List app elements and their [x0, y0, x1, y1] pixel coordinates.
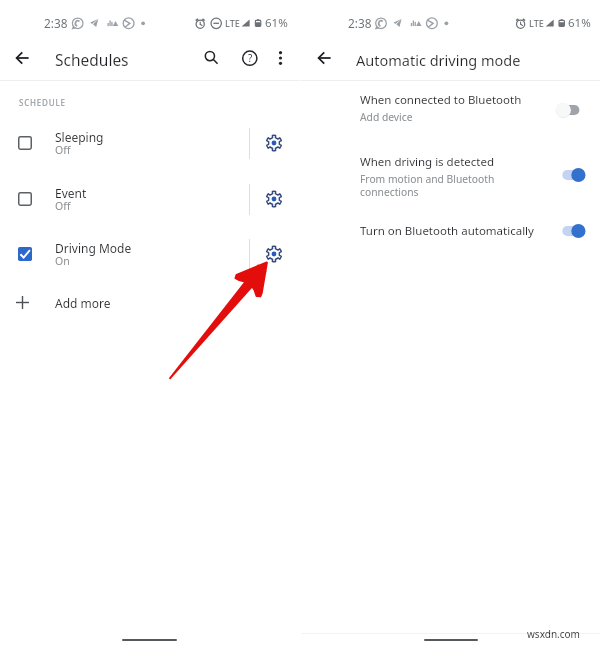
staticText: 61% [265, 15, 288, 31]
button[interactable]: Settings [262, 242, 285, 265]
staticText: 61% [568, 15, 591, 31]
button[interactable]: When connected to Bluetooth [550, 98, 588, 122]
staticText: 2:38 [348, 15, 372, 31]
staticText: On [55, 254, 70, 268]
button[interactable]: Back [8, 44, 36, 72]
button[interactable]: Back [310, 44, 338, 72]
button[interactable]: Sleeping [0, 126, 300, 162]
staticText: Turn on Bluetooth automatically [360, 223, 534, 239]
staticText: LTE [529, 17, 544, 29]
staticText: Off [55, 199, 71, 213]
staticText: Driving Mode [55, 240, 132, 256]
staticText: ? [248, 51, 253, 65]
staticText: Sleeping [55, 129, 104, 145]
staticText: When driving is detected [360, 154, 495, 170]
button[interactable]: Turn on Bluetooth automatically [550, 219, 588, 243]
button[interactable]: Driving Mode [0, 237, 300, 273]
staticText: Add device [360, 110, 413, 124]
button[interactable]: Help [235, 44, 263, 72]
staticText: Add more [55, 295, 111, 311]
staticText: LTE [225, 17, 240, 29]
staticText: 2:38 [44, 15, 68, 31]
staticText: Schedules [55, 49, 129, 70]
button[interactable]: Search [198, 44, 226, 72]
staticText: Off [55, 143, 71, 157]
staticText: Automatic driving mode [356, 50, 521, 70]
staticText: connections [360, 185, 419, 199]
button[interactable]: Settings [262, 187, 285, 210]
staticText: SCHEDULE [19, 97, 66, 108]
button[interactable]: Turn on Bluetooth automatically [301, 219, 600, 243]
staticText: From motion and Bluetooth [360, 172, 495, 186]
button[interactable]: Settings [262, 131, 285, 154]
button[interactable]: Event [0, 182, 300, 218]
staticText: Event [55, 185, 87, 201]
button[interactable]: When connected to Bluetooth [301, 88, 600, 126]
button[interactable]: When driving is detected [301, 150, 600, 202]
staticText: wsxdn.com [527, 627, 580, 641]
button[interactable]: More options [266, 44, 294, 72]
staticText: When connected to Bluetooth [360, 92, 522, 108]
button[interactable]: Add more [0, 289, 300, 317]
button[interactable]: When driving is detected [550, 163, 588, 187]
